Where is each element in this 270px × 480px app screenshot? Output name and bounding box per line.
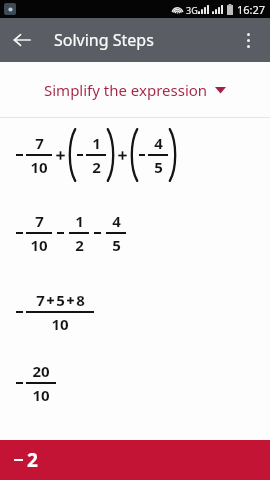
staticText: 4 (112, 211, 121, 231)
staticText: 2 (92, 157, 101, 177)
button[interactable]: 7 (0, 192, 270, 274)
staticText: 20 (32, 361, 50, 381)
staticText: 16:27 (237, 2, 266, 17)
staticText: 2 (27, 447, 38, 473)
staticText: 1 (75, 211, 84, 231)
button[interactable]: Simplify the expression (0, 62, 270, 117)
staticText: 2 (75, 235, 84, 255)
button[interactable]: More options (226, 18, 270, 62)
staticText: 3G (186, 4, 198, 16)
staticText: 5 (154, 157, 163, 177)
staticText: 1 (92, 133, 101, 153)
staticText: 5 (112, 235, 121, 255)
staticText: 7 (36, 290, 45, 310)
staticText: Solving Steps (54, 29, 154, 51)
staticText: 10 (30, 157, 48, 177)
button[interactable]: 7 (0, 274, 270, 350)
staticText: 10 (51, 314, 69, 334)
staticText: 5 (56, 290, 65, 310)
staticText: 4 (154, 133, 163, 153)
button[interactable]: 7 (0, 118, 270, 192)
staticText: 7 (35, 133, 44, 153)
button[interactable]: 2 (0, 440, 270, 480)
staticText: 7 (35, 211, 44, 231)
staticText: Simplify the expression (44, 80, 208, 100)
staticText: 10 (30, 235, 48, 255)
button[interactable]: Navigate up (0, 18, 44, 62)
staticText: 8 (76, 290, 85, 310)
staticText: 10 (32, 385, 50, 405)
button[interactable]: 20 (0, 350, 270, 416)
